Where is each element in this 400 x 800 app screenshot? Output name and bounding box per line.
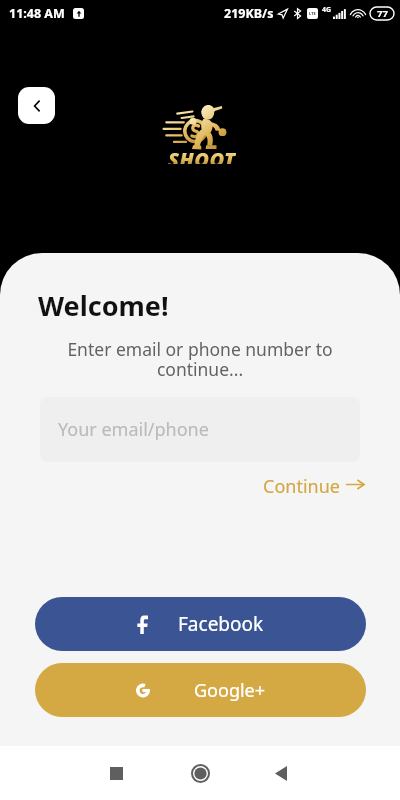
staticText: Welcome! (38, 287, 169, 324)
staticText: 219KB/s (224, 5, 274, 22)
button[interactable]: Facebook (35, 597, 366, 651)
staticText: 4G (322, 5, 332, 15)
staticText: Your email/phone (58, 417, 209, 442)
button[interactable]: Continue (259, 468, 369, 505)
staticText: 11:48 AM (9, 5, 65, 22)
staticText: LTE (309, 11, 316, 16)
button[interactable]: Back (18, 87, 55, 124)
staticText: Google+ (194, 678, 266, 703)
staticText: Enter email or phone number to continue.… (44, 337, 356, 382)
button[interactable]: Back (257, 749, 305, 797)
staticText: Continue (263, 474, 340, 499)
staticText: SHOOT (168, 146, 236, 164)
button[interactable]: Recents (92, 749, 140, 797)
button[interactable]: Your email/phone (40, 397, 360, 462)
button[interactable]: Google+ (35, 663, 366, 717)
button[interactable]: Home (176, 749, 224, 797)
staticText: 77 (377, 7, 388, 20)
staticText: Facebook (178, 611, 264, 637)
